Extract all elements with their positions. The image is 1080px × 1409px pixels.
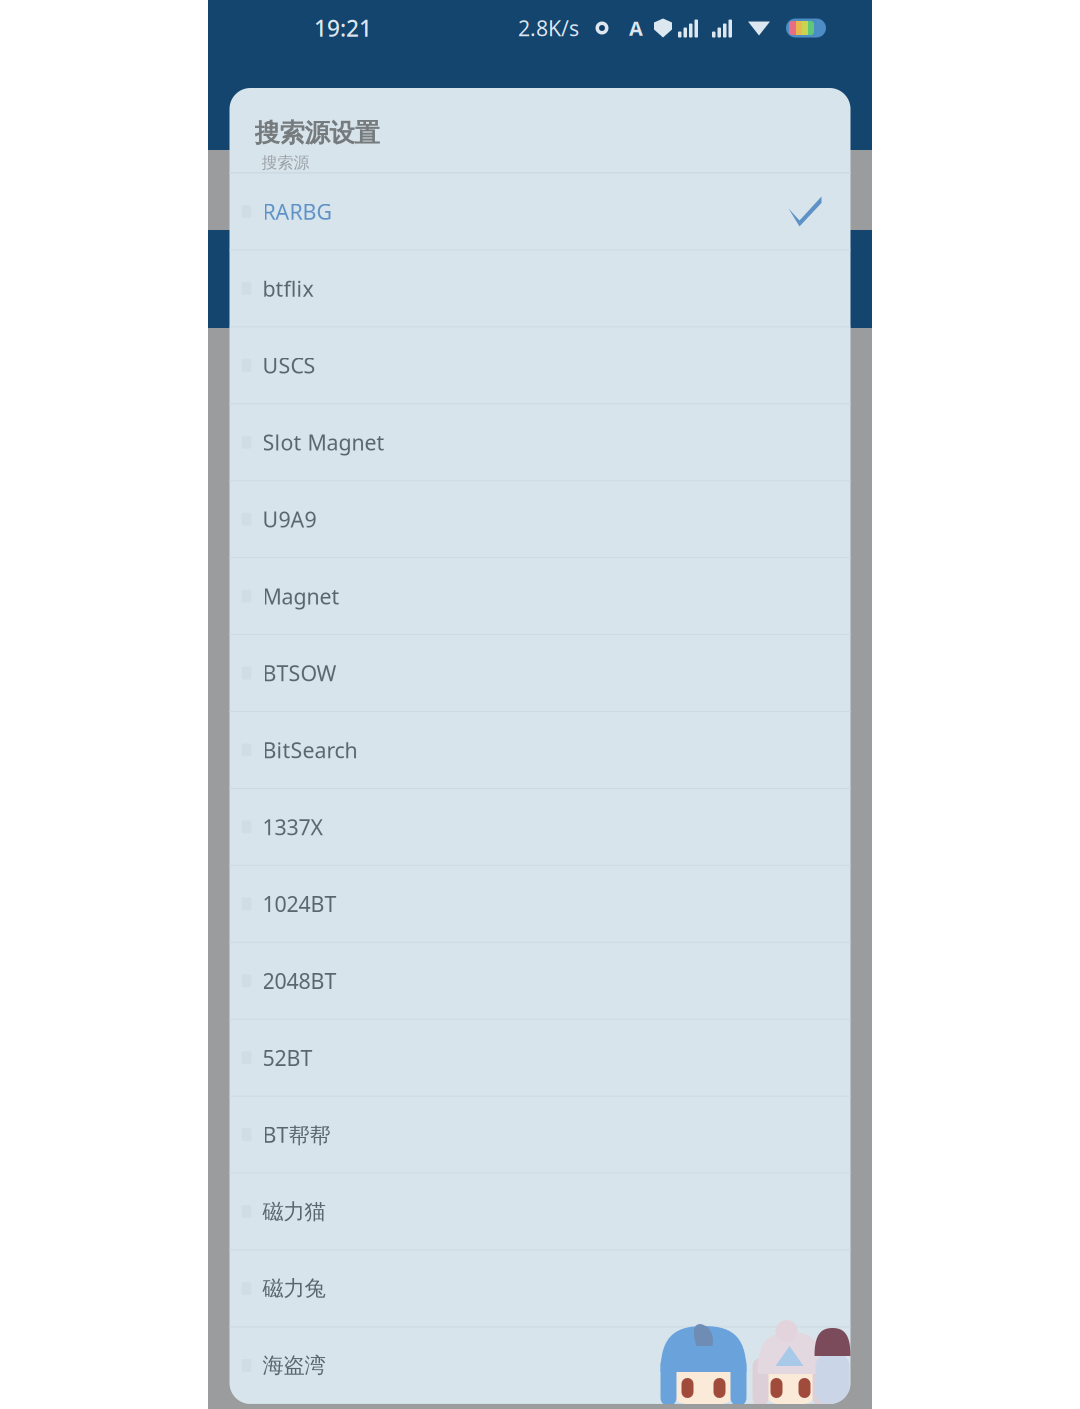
staticText: USCS: [262, 351, 315, 379]
staticText: 52BT: [262, 1043, 312, 1072]
button[interactable]: RARBG: [229, 173, 850, 250]
staticText: BTSOW: [262, 659, 336, 687]
staticText: 2.8K/s: [518, 14, 579, 42]
button[interactable]: Magnet: [229, 558, 850, 635]
button[interactable]: btflix: [229, 250, 850, 327]
staticText: 海盗湾: [262, 1352, 325, 1378]
button[interactable]: 52BT: [229, 1020, 850, 1097]
staticText: BitSearch: [262, 736, 357, 764]
button[interactable]: USCS: [229, 327, 850, 404]
staticText: 磁力猫: [262, 1198, 325, 1225]
staticText: A: [629, 15, 643, 41]
staticText: 1024BT: [262, 890, 336, 918]
button[interactable]: BT帮帮: [229, 1097, 850, 1174]
button[interactable]: 2048BT: [229, 943, 850, 1020]
button[interactable]: 1024BT: [229, 866, 850, 943]
staticText: RARBG: [262, 197, 332, 226]
staticText: U9A9: [262, 505, 316, 533]
button[interactable]: 磁力猫: [229, 1174, 850, 1250]
button[interactable]: 海盗湾: [229, 1327, 850, 1404]
button[interactable]: 1337X: [229, 789, 850, 866]
staticText: Slot Magnet: [262, 428, 384, 456]
button[interactable]: BTSOW: [229, 635, 850, 712]
button[interactable]: U9A9: [229, 481, 850, 558]
staticText: 2048BT: [262, 967, 336, 995]
staticText: btflix: [262, 274, 313, 302]
staticText: Magnet: [262, 582, 339, 610]
button[interactable]: Slot Magnet: [229, 404, 850, 481]
staticText: BT帮帮: [262, 1120, 330, 1149]
staticText: 磁力兔: [262, 1275, 325, 1302]
button[interactable]: 磁力兔: [229, 1250, 850, 1327]
staticText: 搜索源设置: [254, 118, 379, 149]
button[interactable]: BitSearch: [229, 712, 850, 789]
staticText: 19:21: [314, 13, 372, 43]
staticText: 1337X: [262, 813, 323, 841]
staticText: 搜索源: [261, 153, 309, 172]
